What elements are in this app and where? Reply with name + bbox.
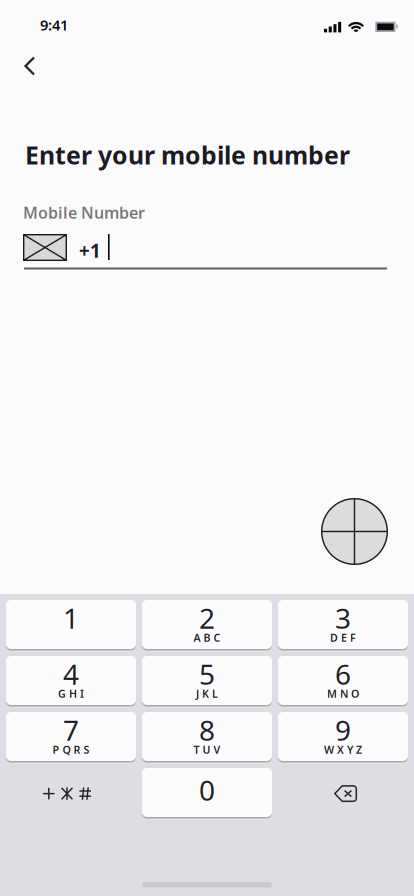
staticText: 2 xyxy=(199,599,215,637)
staticText: 9:41 xyxy=(40,15,68,34)
staticText: 5 xyxy=(199,655,215,693)
staticText: D E F xyxy=(330,630,356,645)
button[interactable]: 3 xyxy=(278,600,408,651)
button[interactable]: 4 xyxy=(6,656,136,707)
button[interactable]: 5 xyxy=(142,656,272,707)
staticText: +1 xyxy=(79,238,101,263)
button[interactable]: 0 xyxy=(142,768,272,819)
button[interactable]: 8 xyxy=(142,712,272,763)
staticText: 8 xyxy=(199,711,215,749)
staticText: W X Y Z xyxy=(324,742,362,757)
staticText: J K L xyxy=(196,686,218,701)
staticText: M N O xyxy=(327,686,359,701)
staticText: 9 xyxy=(335,711,351,749)
button[interactable]: Plus, asterisk, hash xyxy=(6,768,136,819)
staticText: 0 xyxy=(199,771,215,809)
button[interactable]: 2 xyxy=(142,600,272,651)
staticText: G H I xyxy=(58,686,84,701)
staticText: 4 xyxy=(63,655,79,693)
staticText: Enter your mobile number xyxy=(25,138,350,172)
button[interactable]: 7 xyxy=(6,712,136,763)
staticText: Mobile Number xyxy=(23,202,145,223)
staticText: A B C xyxy=(193,630,220,645)
staticText: P Q R S xyxy=(52,742,89,757)
staticText: 6 xyxy=(335,655,351,693)
button[interactable]: 9 xyxy=(278,712,408,763)
button[interactable]: 1 xyxy=(6,600,136,651)
staticText: T U V xyxy=(193,742,220,757)
button[interactable]: 6 xyxy=(278,656,408,707)
staticText: 7 xyxy=(63,711,79,749)
button[interactable]: Back xyxy=(16,44,60,88)
staticText: 1 xyxy=(63,599,79,637)
button[interactable]: Delete xyxy=(278,768,408,819)
staticText: 3 xyxy=(335,599,351,637)
